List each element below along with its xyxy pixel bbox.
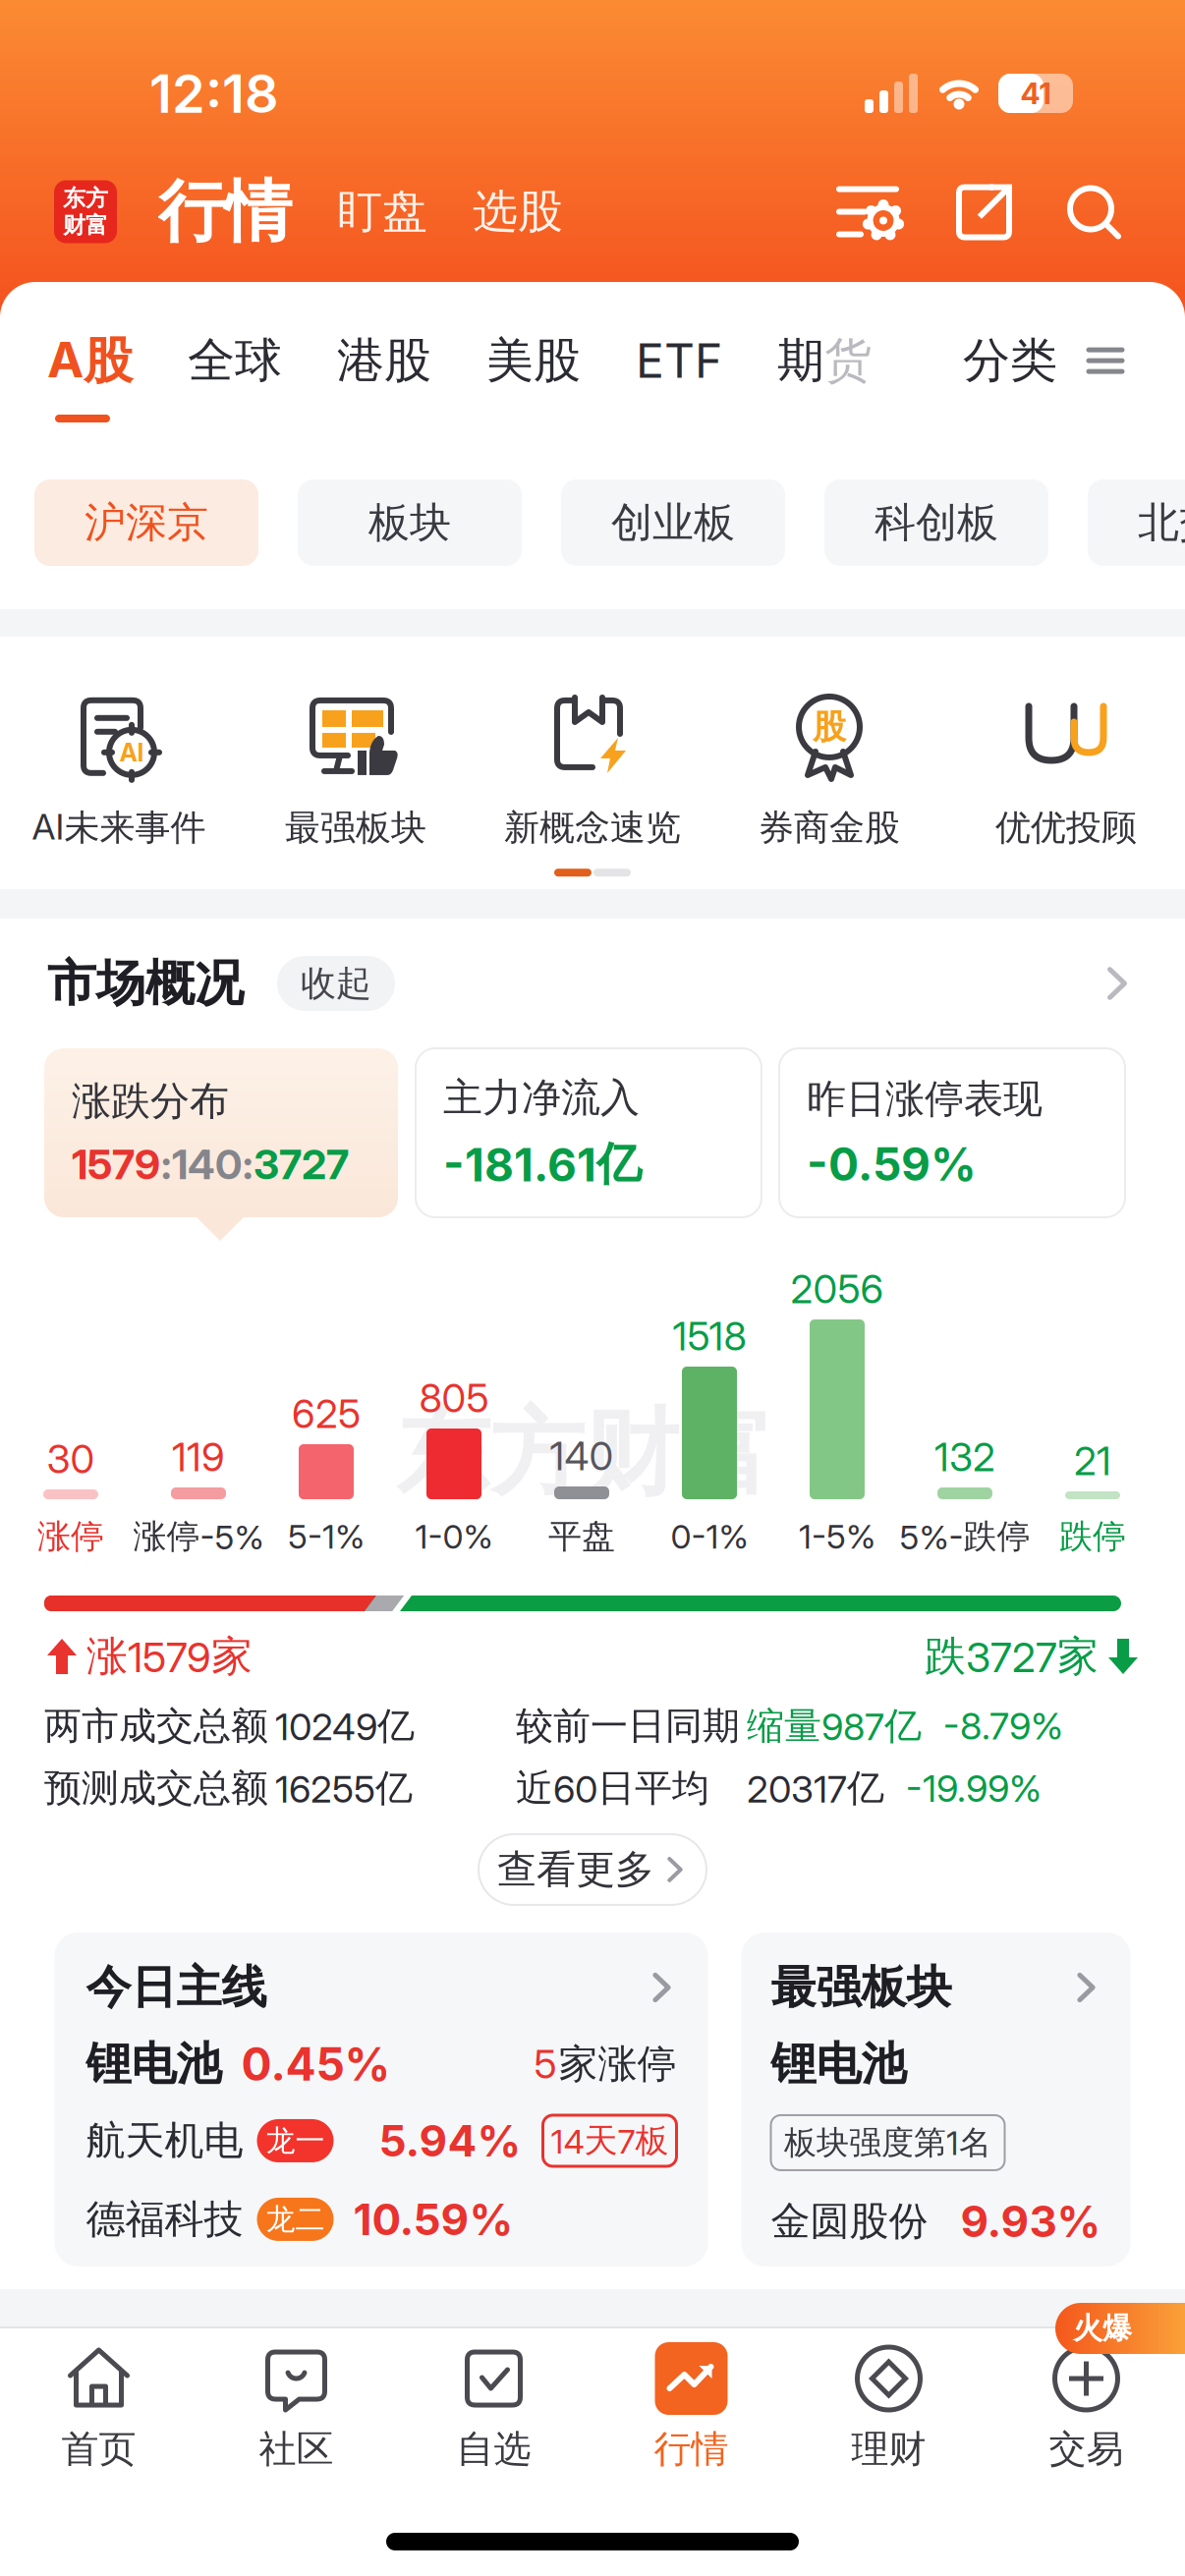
button[interactable]: 盯盘 (337, 185, 427, 239)
staticText: 跌停 (1059, 1517, 1126, 1557)
button[interactable]: 北交所 (1088, 479, 1185, 566)
staticText: 5-1% (288, 1517, 365, 1556)
staticText: 板块 (368, 498, 451, 547)
button[interactable]: AI (0, 690, 237, 849)
staticText: 跌3727家 (925, 1632, 1099, 1681)
staticText: 涨1579家 (86, 1632, 253, 1681)
staticText: 分类 (963, 332, 1057, 389)
staticText: 1-5% (799, 1517, 875, 1556)
button[interactable]: 股 (711, 691, 948, 849)
staticText: AI未来事件 (32, 806, 206, 849)
staticText: -8.79% (943, 1704, 1063, 1747)
staticText: -19.99% (906, 1767, 1042, 1810)
staticText: 昨日涨停表现 (807, 1075, 1043, 1122)
button[interactable]: 涨跌分布 (44, 1048, 398, 1217)
button[interactable]: 创业板 (561, 479, 785, 566)
staticText: 较前一日同期 (516, 1704, 740, 1748)
button[interactable]: ETF (581, 334, 722, 388)
button[interactable]: 分享 (904, 182, 1014, 241)
staticText: 132 (934, 1434, 995, 1480)
staticText: 最强板块 (285, 807, 426, 849)
staticText: 行情 (654, 2427, 729, 2471)
button[interactable]: 最强板块 (741, 1932, 1130, 2267)
staticText: 625 (292, 1391, 361, 1436)
staticText: 家涨停 (559, 2041, 677, 2088)
staticText: 5.94% (379, 2116, 521, 2166)
staticText: 119 (172, 1434, 225, 1480)
staticText: 理财 (851, 2427, 926, 2471)
staticText: 30 (47, 1436, 95, 1482)
staticText: 涨停 (37, 1517, 104, 1557)
button[interactable]: 选股 (473, 185, 563, 239)
button[interactable]: 搜索 (1014, 183, 1122, 240)
button[interactable]: 自选 (395, 2342, 592, 2471)
staticText: 近60日平均 (516, 1766, 709, 1811)
staticText: 2056 (790, 1266, 884, 1312)
staticText: 自选 (456, 2427, 531, 2471)
staticText: 券商金股 (759, 807, 900, 849)
button[interactable]: 理财 (790, 2342, 987, 2471)
button[interactable]: 交易 (987, 2342, 1185, 2471)
staticText: 盯盘 (337, 185, 427, 239)
staticText: 港股 (337, 332, 431, 389)
staticText: 140 (550, 1433, 614, 1479)
staticText: 21 (1074, 1438, 1111, 1484)
staticText: 选股 (473, 185, 563, 239)
staticText: 全球 (188, 332, 282, 389)
staticText: 锂电池 (86, 2037, 222, 2091)
button[interactable]: 最强板块 (237, 691, 474, 849)
staticText: -0.59% (807, 1138, 977, 1190)
staticText: 140 (172, 1140, 242, 1188)
button[interactable]: 收起 (277, 956, 395, 1011)
staticText: 最强板块 (771, 1960, 952, 2015)
button[interactable]: 更多分类 (1057, 347, 1122, 374)
button[interactable]: 美股 (431, 332, 581, 389)
staticText: -181.61亿 (443, 1137, 642, 1191)
button[interactable]: 东方财富 (54, 180, 117, 243)
staticText: 20317亿 (747, 1766, 884, 1811)
button[interactable]: 板块 (298, 479, 522, 566)
button[interactable]: 今日主线 (55, 1932, 708, 2267)
staticText: 1518 (673, 1314, 746, 1359)
button[interactable]: 港股 (282, 332, 431, 389)
button[interactable]: 主力净流入 (416, 1048, 762, 1217)
staticText: 东方财富 (396, 1397, 773, 1510)
staticText: 10249亿 (275, 1704, 415, 1748)
staticText: : (161, 1140, 171, 1188)
staticText: 5%-跌停 (900, 1517, 1030, 1557)
staticText: 北交所 (1138, 498, 1185, 547)
staticText: 火爆 (1073, 2311, 1132, 2346)
button[interactable]: 沪深京 (34, 479, 258, 566)
button[interactable]: A股 (47, 331, 133, 390)
staticText: 德福科技 (86, 2196, 243, 2243)
button[interactable]: 优优投顾 (948, 691, 1185, 849)
staticText: 锂电池 (771, 2037, 906, 2091)
staticText: 龙一 (266, 2123, 325, 2158)
staticText: 5 (534, 2042, 557, 2087)
button[interactable]: 首页 (0, 2342, 197, 2471)
staticText: 龙二 (266, 2202, 325, 2237)
staticText: 查看更多 (497, 1846, 654, 1893)
button[interactable]: 分类 (963, 332, 1057, 389)
button[interactable]: 期 (722, 332, 872, 389)
staticText: 板块强度第1名 (784, 2123, 991, 2162)
staticText: 社区 (259, 2427, 334, 2471)
button[interactable]: 全球 (133, 332, 282, 389)
button[interactable]: 更多市场概况 (1100, 967, 1134, 1000)
staticText: 主力净流入 (443, 1074, 640, 1121)
staticText: : (243, 1140, 253, 1188)
staticText: 14天7板 (551, 2121, 669, 2161)
staticText: 0.45% (241, 2038, 391, 2090)
button[interactable]: 昨日涨停表现 (779, 1048, 1125, 1217)
staticText: 优优投顾 (995, 807, 1137, 849)
button[interactable]: 社区 (197, 2342, 395, 2471)
staticText: 行情 (158, 172, 292, 252)
staticText: 收起 (301, 962, 371, 1005)
button[interactable]: 查看更多 (479, 1834, 706, 1905)
staticText: AI (119, 738, 144, 767)
staticText: ETF (636, 334, 722, 388)
button[interactable]: 科创板 (824, 479, 1048, 566)
button[interactable]: 行情 (592, 2342, 790, 2471)
button[interactable]: 自定义列表 (839, 182, 904, 241)
button[interactable]: 新概念速览 (474, 691, 711, 849)
